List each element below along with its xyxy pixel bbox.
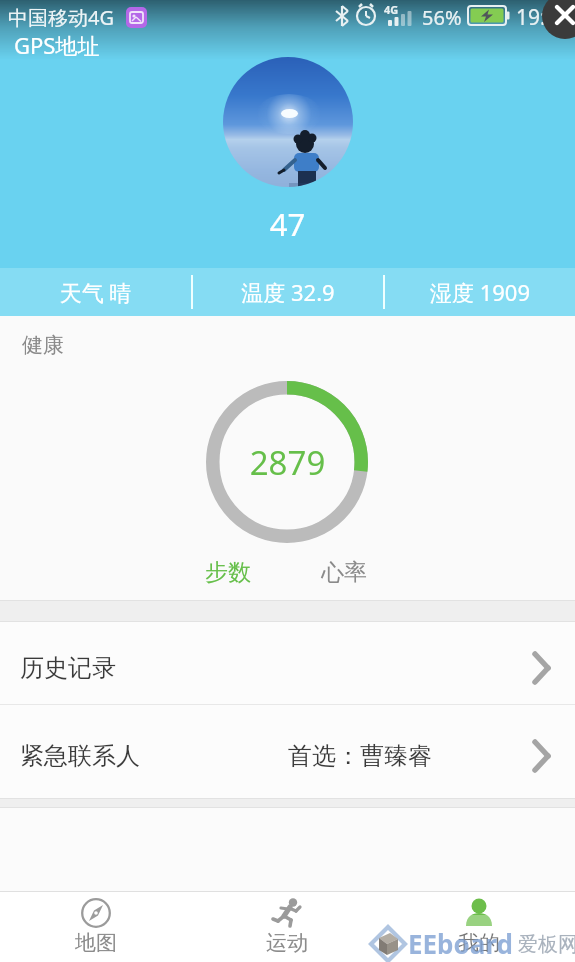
staticText: EEboard	[408, 926, 513, 961]
staticText: 2879	[0, 440, 575, 485]
staticText: 爱板网	[518, 932, 575, 957]
staticText: GPS地址	[14, 30, 100, 60]
staticText: 步数	[205, 558, 251, 587]
staticText: 我的	[458, 930, 500, 956]
staticText: 历史记录	[20, 653, 116, 683]
staticText: 心率	[321, 558, 367, 587]
staticText: 湿度 1909	[385, 277, 575, 307]
staticText: 4G	[384, 2, 399, 17]
staticText: 47	[0, 203, 575, 245]
staticText: 温度 32.9	[193, 277, 383, 307]
staticText: 紧急联系人	[20, 741, 140, 771]
staticText: 地图	[75, 930, 117, 956]
staticText: 56%	[422, 4, 462, 31]
staticText: 19:0	[516, 3, 558, 32]
staticText: 天气 晴	[0, 277, 191, 307]
staticText: 首选：曹臻睿	[288, 741, 432, 771]
staticText: 中国移动4G	[8, 4, 114, 31]
staticText: 运动	[266, 930, 308, 956]
staticText: 健康	[22, 332, 64, 358]
